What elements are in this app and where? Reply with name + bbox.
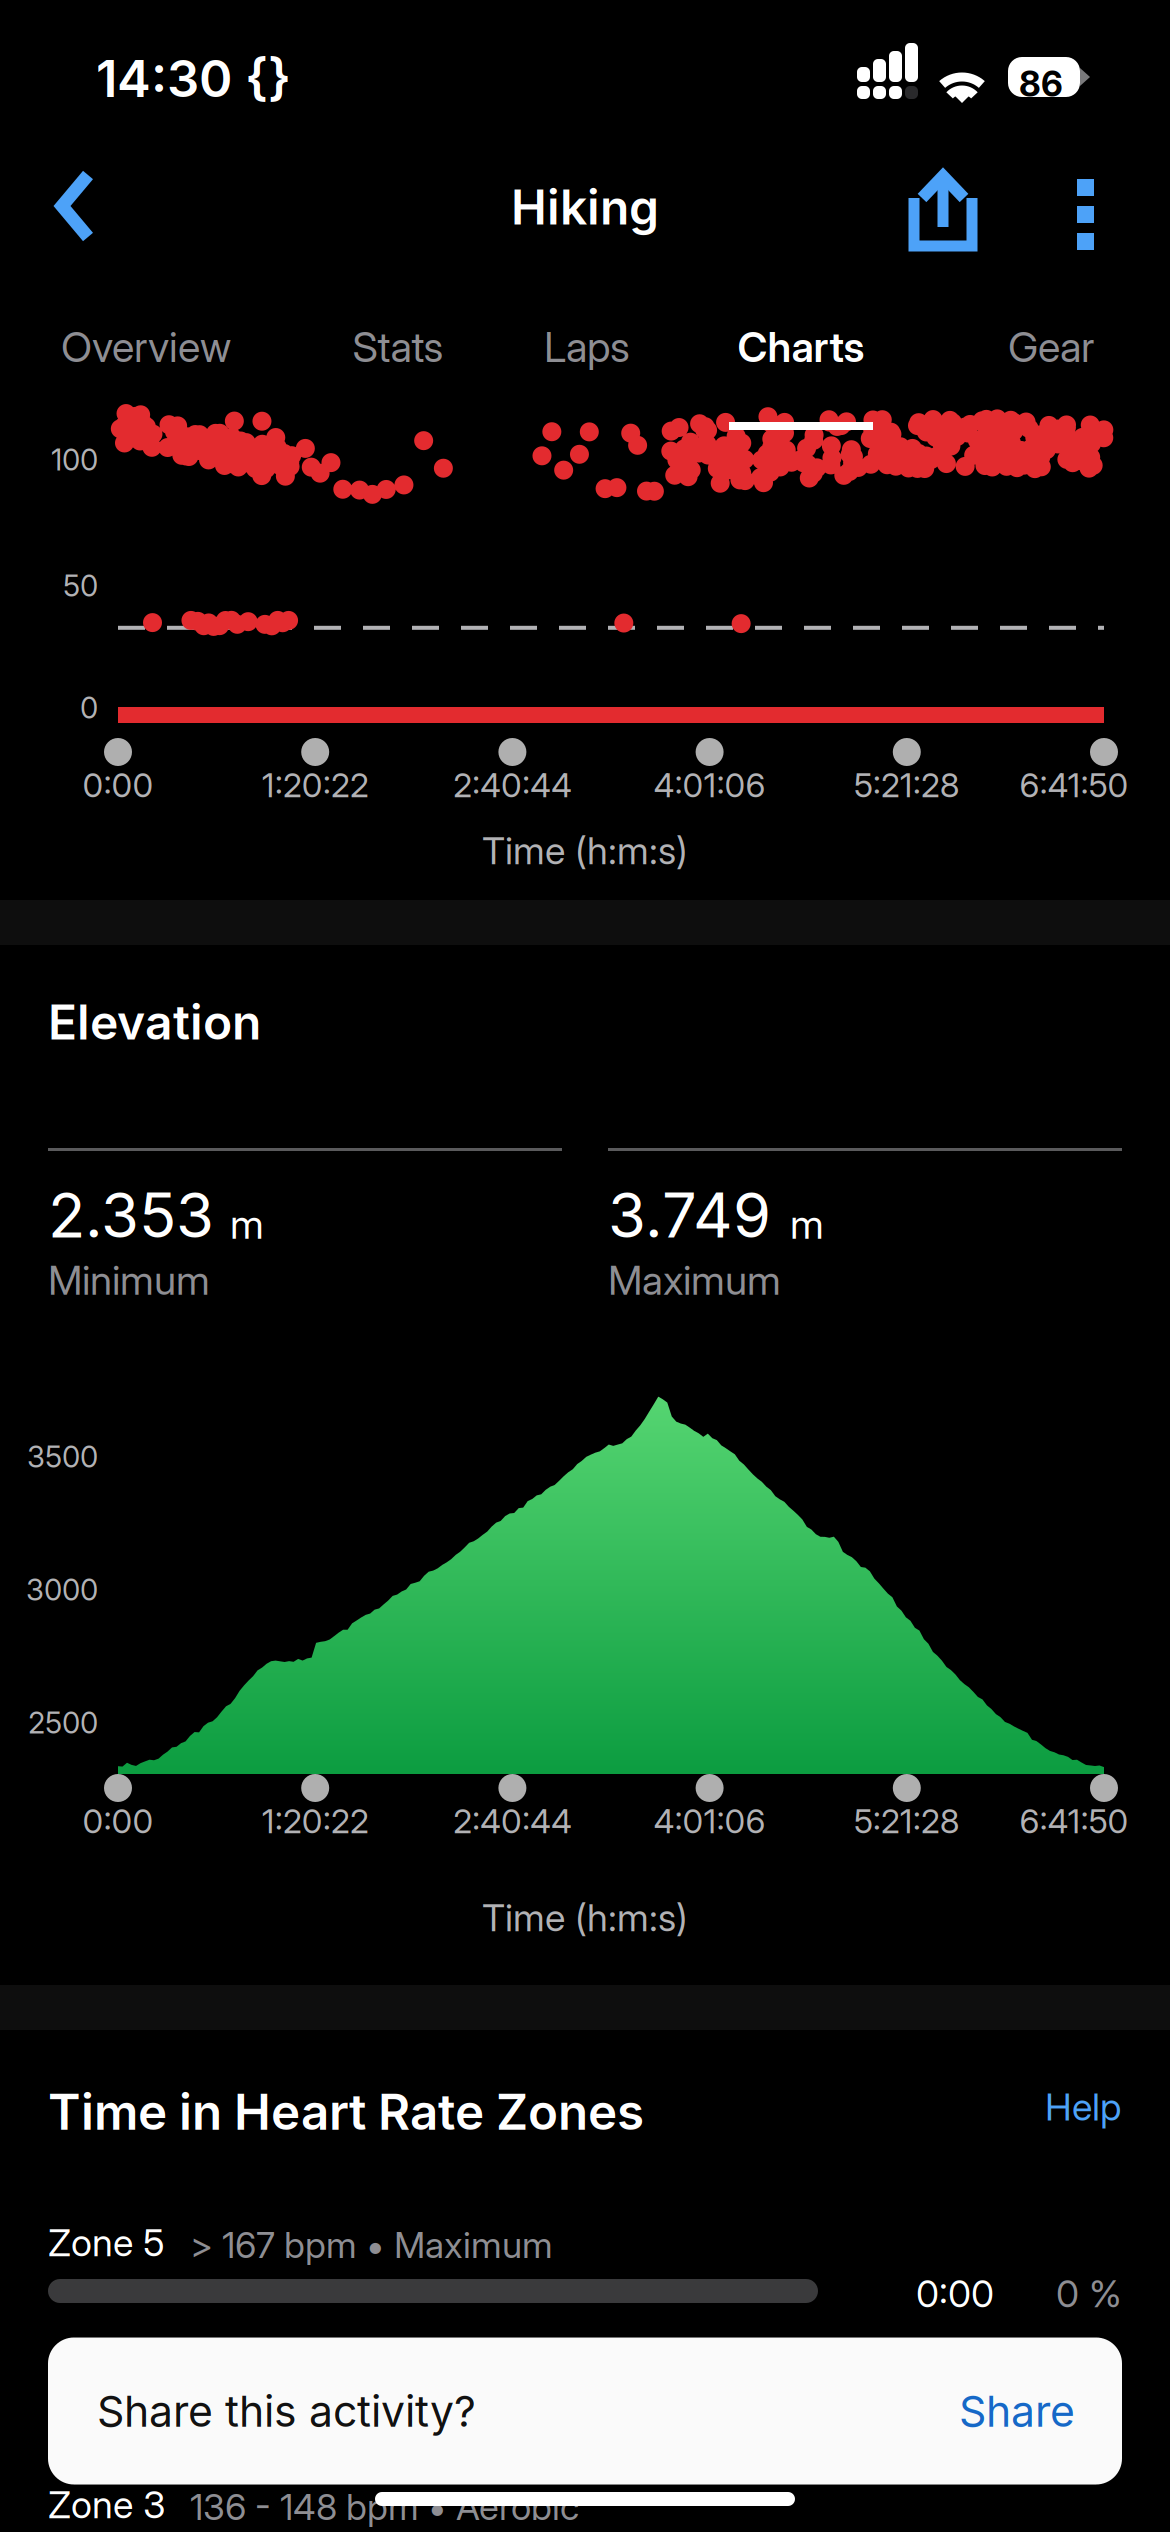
staticText: 0:00 <box>82 765 153 805</box>
staticText: 2:40:44 <box>453 1801 572 1841</box>
staticText: 136 - 148 bpm • Aerobic <box>190 2485 579 2529</box>
button[interactable]: Help <box>951 2070 1121 2144</box>
staticText: Time (h:m:s) <box>482 1895 688 1940</box>
staticText: 6:41:50 <box>1019 1801 1128 1841</box>
staticText: 3.749 <box>608 1178 771 1252</box>
staticText: 0:00 <box>916 2271 994 2316</box>
button[interactable]: Gear <box>962 292 1140 437</box>
staticText: 1:20:22 <box>262 1801 369 1841</box>
staticText: 50 <box>63 568 98 603</box>
staticText: 6:41:50 <box>1019 765 1128 805</box>
staticText: Stats <box>352 322 443 372</box>
staticText: 5:21:28 <box>854 765 960 805</box>
staticText: 14:30 {} <box>96 48 291 109</box>
staticText: Minimum <box>48 1256 210 1304</box>
staticText: m <box>230 1200 264 1248</box>
button[interactable]: Back <box>44 145 164 265</box>
staticText: 2500 <box>28 1705 98 1740</box>
staticText: Help <box>1045 2084 1121 2130</box>
staticText: m <box>790 1200 824 1248</box>
staticText: > 167 bpm • Maximum <box>190 2223 553 2267</box>
staticText: 86 <box>1019 63 1063 105</box>
staticText: Elevation <box>48 993 261 1051</box>
staticText: Gear <box>1008 322 1094 372</box>
staticText: 0 % <box>1056 2271 1122 2316</box>
staticText: Overview <box>61 322 231 372</box>
button[interactable]: Charts <box>699 292 903 437</box>
staticText: 0:00 <box>82 1801 153 1841</box>
staticText: 4:01:06 <box>654 1801 766 1841</box>
staticText: Time (h:m:s) <box>482 828 688 873</box>
button[interactable]: Laps <box>501 292 673 437</box>
staticText: 100 <box>51 442 98 477</box>
button[interactable]: Share <box>888 153 998 263</box>
button[interactable]: More options <box>1030 150 1140 260</box>
staticText: Time in Heart Rate Zones <box>48 2082 644 2142</box>
staticText: 4:01:06 <box>654 765 766 805</box>
staticText: 5:21:28 <box>854 1801 960 1841</box>
button[interactable]: Stats <box>303 292 493 437</box>
staticText: 1:20:22 <box>262 765 369 805</box>
staticText: Share this activity? <box>97 2385 476 2437</box>
staticText: Zone 5 <box>48 2220 165 2265</box>
button[interactable]: Share this activity? <box>48 2337 1122 2485</box>
staticText: Zone 3 <box>48 2482 166 2527</box>
staticText: Laps <box>544 322 630 372</box>
staticText: 3000 <box>26 1572 98 1608</box>
staticText: Share <box>959 2385 1075 2437</box>
staticText: 0 <box>80 690 98 725</box>
staticText: Charts <box>737 322 864 372</box>
staticText: 3500 <box>27 1439 98 1475</box>
staticText: 2:40:44 <box>453 765 572 805</box>
staticText: Maximum <box>608 1256 781 1304</box>
staticText: Hiking <box>511 178 659 236</box>
staticText: 2.353 <box>48 1178 214 1252</box>
button[interactable]: Overview <box>16 292 276 437</box>
